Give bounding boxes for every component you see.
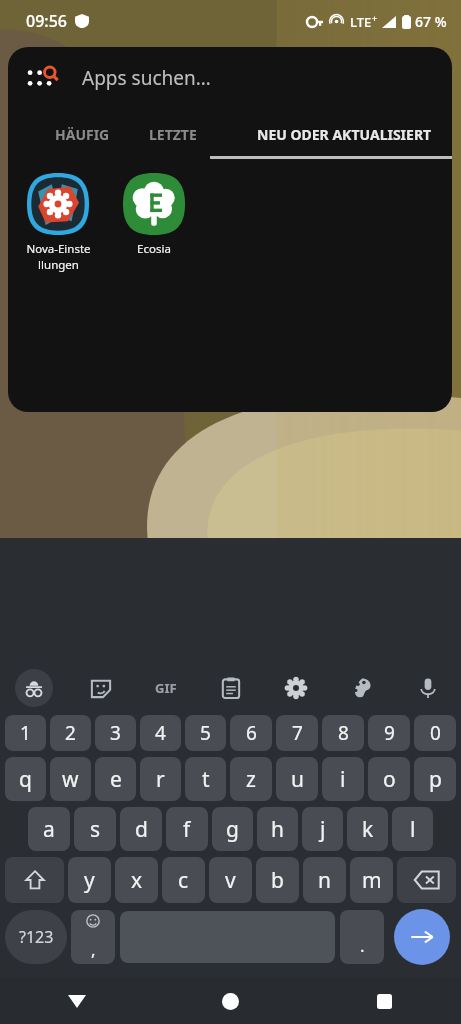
button[interactable]: 7 [276,715,318,751]
button[interactable]: g [212,807,253,851]
button[interactable]: t [185,757,226,801]
staticText: i [340,765,346,794]
staticText: GIF [155,679,177,697]
button[interactable]: z [230,757,272,801]
button[interactable]: 0 [414,715,456,751]
staticText: x [131,866,143,895]
button[interactable]: Clipboard [198,664,263,712]
staticText: p [429,765,442,794]
staticText: 2 [65,720,76,746]
button[interactable]: Apps suchen… [8,47,452,109]
button[interactable]: n [303,857,346,903]
button[interactable]: p [414,757,456,801]
button[interactable]: q [5,757,46,801]
staticText: 8 [338,720,349,746]
button[interactable]: x [115,857,158,903]
button[interactable]: Back [0,978,153,1024]
staticText: w [62,765,79,794]
button[interactable]: m [350,857,393,903]
button[interactable]: i [322,757,364,801]
staticText: 0 [430,720,441,746]
staticText: Apps suchen… [82,65,211,91]
button[interactable]: b [256,857,299,903]
button[interactable]: , [71,910,115,964]
button[interactable]: e [95,757,136,801]
button[interactable]: GIF [133,664,198,712]
button[interactable]: y [68,857,111,903]
staticText: 09:56 [26,10,67,32]
button[interactable]: d [120,807,162,851]
staticText: 67 % [415,12,447,31]
button[interactable]: 2 [50,715,91,751]
button[interactable]: c [162,857,205,903]
staticText: 9 [384,720,395,746]
button[interactable]: o [368,757,410,801]
staticText: 6 [246,720,257,746]
button[interactable]: 4 [140,715,181,751]
staticText: Ecosia [137,241,171,257]
button[interactable]: f [166,807,208,851]
button[interactable]: 5 [185,715,226,751]
button[interactable]: h [257,807,298,851]
staticText: 3 [110,720,121,746]
button[interactable]: v [209,857,252,903]
staticText: f [183,815,191,844]
button[interactable]: Stickers [68,664,133,712]
button[interactable]: Themes [329,664,395,712]
staticText: Nova-Einste llungen [26,241,91,272]
staticText: HÄUFIG [55,125,110,144]
staticText: r [156,765,165,794]
staticText: s [90,815,101,844]
staticText: m [362,866,382,895]
button[interactable]: Ecosia [108,173,200,257]
staticText: n [318,866,331,895]
button[interactable]: l [392,807,433,851]
button[interactable]: ?123 [5,910,67,964]
button[interactable]: 6 [230,715,272,751]
button[interactable]: s [74,807,116,851]
staticText: 1 [20,720,31,746]
button[interactable]: 3 [95,715,136,751]
staticText: LETZTE [149,125,197,144]
button[interactable]: j [302,807,343,851]
button[interactable]: Settings [263,664,329,712]
staticText: l [410,815,416,844]
button[interactable]: . [340,910,384,964]
staticText: , [91,938,96,961]
staticText: NEU ODER AKTUALISIERT [257,125,432,144]
staticText: b [271,866,284,895]
staticText: 5 [200,720,211,746]
button[interactable]: Nova-Einste llungen [8,173,108,272]
button[interactable]: Home [153,978,307,1024]
button[interactable]: Enter [394,909,450,965]
staticText: e [110,765,122,794]
staticText: LTE [350,13,372,31]
staticText: g [226,815,239,844]
button[interactable]: r [140,757,181,801]
button[interactable]: 1 [5,715,46,751]
button[interactable]: Recent apps [307,978,461,1024]
button[interactable]: HÄUFIG [36,109,128,159]
staticText: t [202,765,210,794]
staticText: ?123 [19,926,54,948]
button[interactable]: NEU ODER AKTUALISIERT [236,109,452,159]
button[interactable]: Shift [5,857,64,903]
button[interactable]: 8 [322,715,364,751]
staticText: q [19,765,32,794]
staticText: k [362,815,374,844]
staticText: 4 [155,720,166,746]
button[interactable]: w [50,757,91,801]
staticText: o [383,765,396,794]
staticText: u [291,765,304,794]
button[interactable]: k [347,807,388,851]
staticText: y [84,866,95,895]
staticText: c [178,866,189,895]
button[interactable]: Incognito mode [0,664,68,712]
button[interactable]: u [276,757,318,801]
button[interactable]: Voice input [395,664,461,712]
button[interactable]: Backspace [397,857,456,903]
button[interactable]: a [28,807,70,851]
button[interactable]: LETZTE [128,109,218,159]
button[interactable]: 9 [368,715,410,751]
